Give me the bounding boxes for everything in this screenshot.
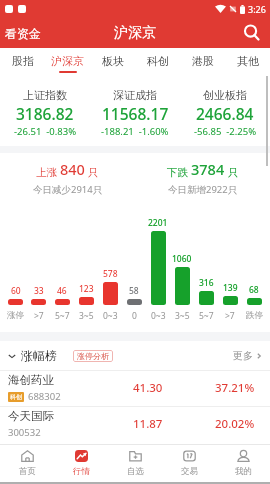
button[interactable]: 上涨 bbox=[0, 153, 135, 200]
button[interactable]: 涨幅榜 bbox=[7, 348, 113, 363]
button[interactable]: 深证成指 bbox=[90, 76, 180, 146]
staticText: 其他 bbox=[237, 54, 259, 68]
staticText: 只 bbox=[88, 166, 99, 179]
staticText: 840 bbox=[60, 159, 85, 179]
staticText: 海创药业 bbox=[8, 373, 54, 387]
button[interactable]: 涨停分析 bbox=[73, 350, 113, 362]
button[interactable]: 今天国际 bbox=[0, 406, 270, 442]
staticText: 股指 bbox=[12, 54, 34, 68]
staticText: 41.30 bbox=[133, 380, 163, 396]
staticText: 深证成指 bbox=[113, 88, 157, 102]
staticText: 20.02% bbox=[215, 416, 255, 432]
staticText: 1060 bbox=[172, 253, 192, 265]
button[interactable]: 沪深京 bbox=[45, 48, 90, 76]
staticText: 3186.82 bbox=[16, 103, 74, 124]
staticText: 2466.84 bbox=[196, 103, 254, 124]
button[interactable]: 行情 bbox=[54, 445, 108, 482]
staticText: -26.51 -0.83% bbox=[14, 125, 77, 138]
button[interactable]: 创业板指 bbox=[180, 76, 270, 146]
staticText: 涨停分析 bbox=[77, 351, 109, 361]
staticText: 跌停 bbox=[246, 310, 263, 321]
staticText: 今天国际 bbox=[8, 409, 54, 423]
staticText: 港股 bbox=[192, 54, 214, 68]
staticText: 37.21% bbox=[215, 380, 255, 396]
staticText: 68 bbox=[249, 284, 259, 296]
button[interactable]: 海创药业 bbox=[0, 370, 270, 406]
button[interactable]: 我的 bbox=[216, 445, 270, 482]
staticText: 更多 bbox=[233, 349, 253, 362]
staticText: 今日减少2914只 bbox=[33, 183, 103, 196]
staticText: 316 bbox=[199, 277, 214, 289]
staticText: 60 bbox=[11, 285, 21, 297]
button[interactable]: 更多 bbox=[233, 349, 263, 362]
staticText: 0~3 bbox=[151, 310, 166, 322]
button[interactable]: 首页 bbox=[0, 445, 54, 482]
button[interactable]: 下跌 bbox=[135, 153, 270, 200]
staticText: 涨停 bbox=[7, 310, 24, 321]
staticText: 沪深京 bbox=[51, 54, 84, 68]
staticText: 0 bbox=[132, 310, 137, 322]
staticText: 3~5 bbox=[79, 310, 94, 322]
staticText: 上涨 bbox=[36, 166, 57, 179]
staticText: -56.85 -2.25% bbox=[194, 125, 257, 138]
button[interactable]: 板块 bbox=[90, 48, 135, 76]
staticText: 3~5 bbox=[175, 310, 190, 322]
staticText: 2201 bbox=[148, 217, 168, 229]
staticText: -188.21 -1.60% bbox=[101, 125, 169, 138]
staticText: 交易 bbox=[181, 466, 198, 477]
staticText: 涨幅榜 bbox=[21, 348, 57, 363]
staticText: 看资金 bbox=[5, 26, 41, 41]
staticText: 上证指数 bbox=[23, 88, 67, 102]
button[interactable]: 其他 bbox=[225, 48, 270, 76]
staticText: 创业板指 bbox=[203, 88, 247, 102]
button[interactable]: 股指 bbox=[0, 48, 45, 76]
staticText: 5~7 bbox=[199, 310, 214, 322]
staticText: >7 bbox=[225, 310, 235, 322]
button[interactable]: 自选 bbox=[108, 445, 162, 482]
staticText: 139 bbox=[223, 282, 238, 294]
staticText: 300532 bbox=[8, 426, 41, 439]
staticText: 行情 bbox=[73, 466, 90, 477]
staticText: 今日新增2922只 bbox=[168, 183, 238, 196]
button[interactable]: Search bbox=[239, 20, 265, 46]
staticText: 科创 bbox=[147, 54, 169, 68]
button[interactable]: 上证指数 bbox=[0, 76, 90, 146]
staticText: 5~7 bbox=[55, 310, 70, 322]
staticText: 578 bbox=[103, 268, 118, 280]
staticText: 下跌 bbox=[167, 166, 188, 179]
staticText: 自选 bbox=[127, 466, 144, 477]
staticText: 首页 bbox=[19, 466, 36, 477]
staticText: 科创 bbox=[10, 393, 22, 401]
staticText: 123 bbox=[79, 283, 94, 295]
staticText: 只 bbox=[228, 166, 239, 179]
staticText: 0~3 bbox=[103, 310, 118, 322]
staticText: >7 bbox=[34, 310, 44, 322]
staticText: 3784 bbox=[191, 159, 225, 179]
button[interactable]: 交易 bbox=[162, 445, 216, 482]
staticText: 板块 bbox=[102, 54, 124, 68]
button[interactable]: 科创 bbox=[135, 48, 180, 76]
staticText: 58 bbox=[129, 285, 139, 297]
staticText: 46 bbox=[57, 285, 67, 297]
staticText: 我的 bbox=[235, 466, 252, 477]
staticText: 3:26 bbox=[248, 3, 266, 15]
staticText: 33 bbox=[34, 285, 44, 297]
staticText: 11568.17 bbox=[102, 103, 169, 124]
button[interactable]: 港股 bbox=[180, 48, 225, 76]
button[interactable]: 看资金 bbox=[0, 21, 46, 46]
staticText: 688302 bbox=[28, 390, 61, 403]
staticText: 11.87 bbox=[133, 416, 163, 432]
staticText: 沪深京 bbox=[114, 24, 156, 42]
